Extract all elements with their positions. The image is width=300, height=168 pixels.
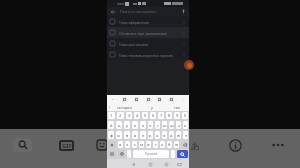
staticText: 4 — [136, 113, 139, 118]
button[interactable]: Search — [13, 138, 32, 152]
button[interactable]: 9 — [174, 112, 180, 119]
button[interactable]: ю — [174, 141, 179, 148]
button[interactable]: у — [124, 121, 130, 129]
button[interactable]: Keyboard — [175, 160, 183, 168]
staticText: ь — [161, 142, 164, 147]
staticText: . — [172, 152, 174, 157]
button[interactable]: 4 — [134, 112, 140, 119]
staticText: Темы для значков — [119, 42, 149, 46]
staticText: н — [149, 123, 152, 128]
staticText: д — [170, 133, 173, 138]
button[interactable]: т — [153, 141, 158, 148]
staticText: сегодня — [117, 105, 132, 110]
button[interactable]: ф — [108, 131, 114, 139]
button[interactable]: Keyboard tool 4 — [146, 97, 151, 102]
button[interactable]: р — [148, 131, 153, 139]
staticText: и — [147, 142, 150, 147]
button[interactable]: ц — [116, 121, 122, 129]
staticText: у — [151, 105, 153, 110]
button[interactable]: 6 — [150, 112, 156, 119]
button[interactable]: ш — [162, 121, 167, 129]
button[interactable]: Assistant — [184, 60, 194, 70]
button[interactable]: е — [140, 121, 146, 129]
button[interactable]: г — [155, 121, 160, 129]
button[interactable]: х — [183, 121, 188, 129]
button[interactable]: з — [176, 121, 181, 129]
button[interactable]: о — [155, 131, 160, 139]
staticText: あ — [191, 140, 201, 151]
button[interactable]: ь — [160, 141, 165, 148]
button[interactable]: в — [124, 131, 130, 139]
button[interactable]: э — [183, 131, 188, 139]
staticText: ц — [118, 123, 121, 128]
button[interactable]: . — [171, 150, 175, 158]
button[interactable]: 7 — [158, 112, 164, 119]
button[interactable]: Темы для значков — [107, 38, 189, 49]
button[interactable]: й — [108, 121, 114, 129]
button[interactable]: Recents — [162, 160, 170, 168]
button[interactable]: Отключить звук уведомлений — [107, 27, 189, 38]
button[interactable]: Language — [189, 138, 202, 152]
staticText: е — [142, 123, 145, 128]
staticText: ж — [177, 133, 181, 138]
button[interactable]: Keyboard tool 6 — [169, 97, 174, 102]
button[interactable]: Home — [146, 160, 154, 168]
button[interactable]: Shift — [108, 141, 116, 148]
staticText: к — [134, 123, 137, 128]
button[interactable]: Emoji — [95, 138, 109, 152]
staticText: л — [163, 133, 166, 138]
button[interactable]: More options — [268, 138, 288, 152]
button[interactable]: ж — [176, 131, 181, 139]
button[interactable]: Info — [228, 138, 242, 152]
staticText: в — [126, 133, 129, 138]
button[interactable]: ы — [116, 131, 122, 139]
button[interactable]: Keyboard tool 7 — [181, 97, 186, 102]
button[interactable]: Backspace — [181, 141, 188, 148]
button[interactable]: п — [140, 131, 146, 139]
button[interactable]: 2 — [117, 112, 124, 119]
staticText: п — [142, 133, 145, 138]
button[interactable]: Emoji — [118, 150, 125, 158]
button[interactable]: с — [132, 141, 137, 148]
button[interactable]: 0 — [182, 112, 188, 119]
button[interactable]: Keyboard tool 1 — [110, 97, 115, 102]
button[interactable]: Back — [129, 160, 137, 168]
button[interactable]: м — [139, 141, 144, 148]
button[interactable]: щ — [169, 121, 174, 129]
button[interactable]: к — [132, 121, 138, 129]
staticText: ш — [163, 123, 167, 128]
button[interactable]: 1 — [108, 112, 115, 119]
staticText: 2 — [119, 113, 122, 118]
button[interactable]: а — [132, 131, 138, 139]
staticText: й — [110, 123, 113, 128]
button[interactable]: я — [118, 141, 123, 148]
staticText: Поиск в настройках — [120, 9, 157, 14]
staticText: так — [174, 105, 180, 110]
button[interactable]: GIF — [57, 138, 76, 152]
button[interactable]: Темы значков отдельных прилож. — [107, 49, 189, 60]
button[interactable]: л — [162, 131, 167, 139]
button[interactable]: 5 — [142, 112, 148, 119]
button[interactable]: д — [169, 131, 174, 139]
button[interactable]: н — [148, 121, 153, 129]
staticText: 5 — [144, 113, 147, 118]
staticText: ы — [117, 133, 121, 138]
button[interactable]: Русский — [133, 150, 169, 158]
button[interactable]: 3 — [126, 112, 132, 119]
button[interactable]: 8 — [166, 112, 172, 119]
button[interactable]: и — [146, 141, 151, 148]
button[interactable]: ч — [125, 141, 130, 148]
button[interactable]: Keyboard tool 3 — [134, 97, 139, 102]
staticText: 7 — [160, 113, 163, 118]
button[interactable]: , — [127, 150, 131, 158]
button[interactable]: Keyboard tool 5 — [157, 97, 162, 102]
button[interactable]: Back — [107, 7, 189, 16]
button[interactable]: б — [167, 141, 172, 148]
button[interactable]: Темы оформления — [107, 16, 189, 27]
staticText: Отключить звук уведомлений — [119, 31, 167, 35]
button[interactable]: Keyboard tool 2 — [122, 97, 127, 102]
button[interactable]: Numbers — [108, 150, 116, 158]
staticText: Темы значков отдельных прилож. — [119, 53, 174, 57]
other: Voice search — [181, 9, 186, 14]
button[interactable]: Search — [177, 150, 188, 158]
